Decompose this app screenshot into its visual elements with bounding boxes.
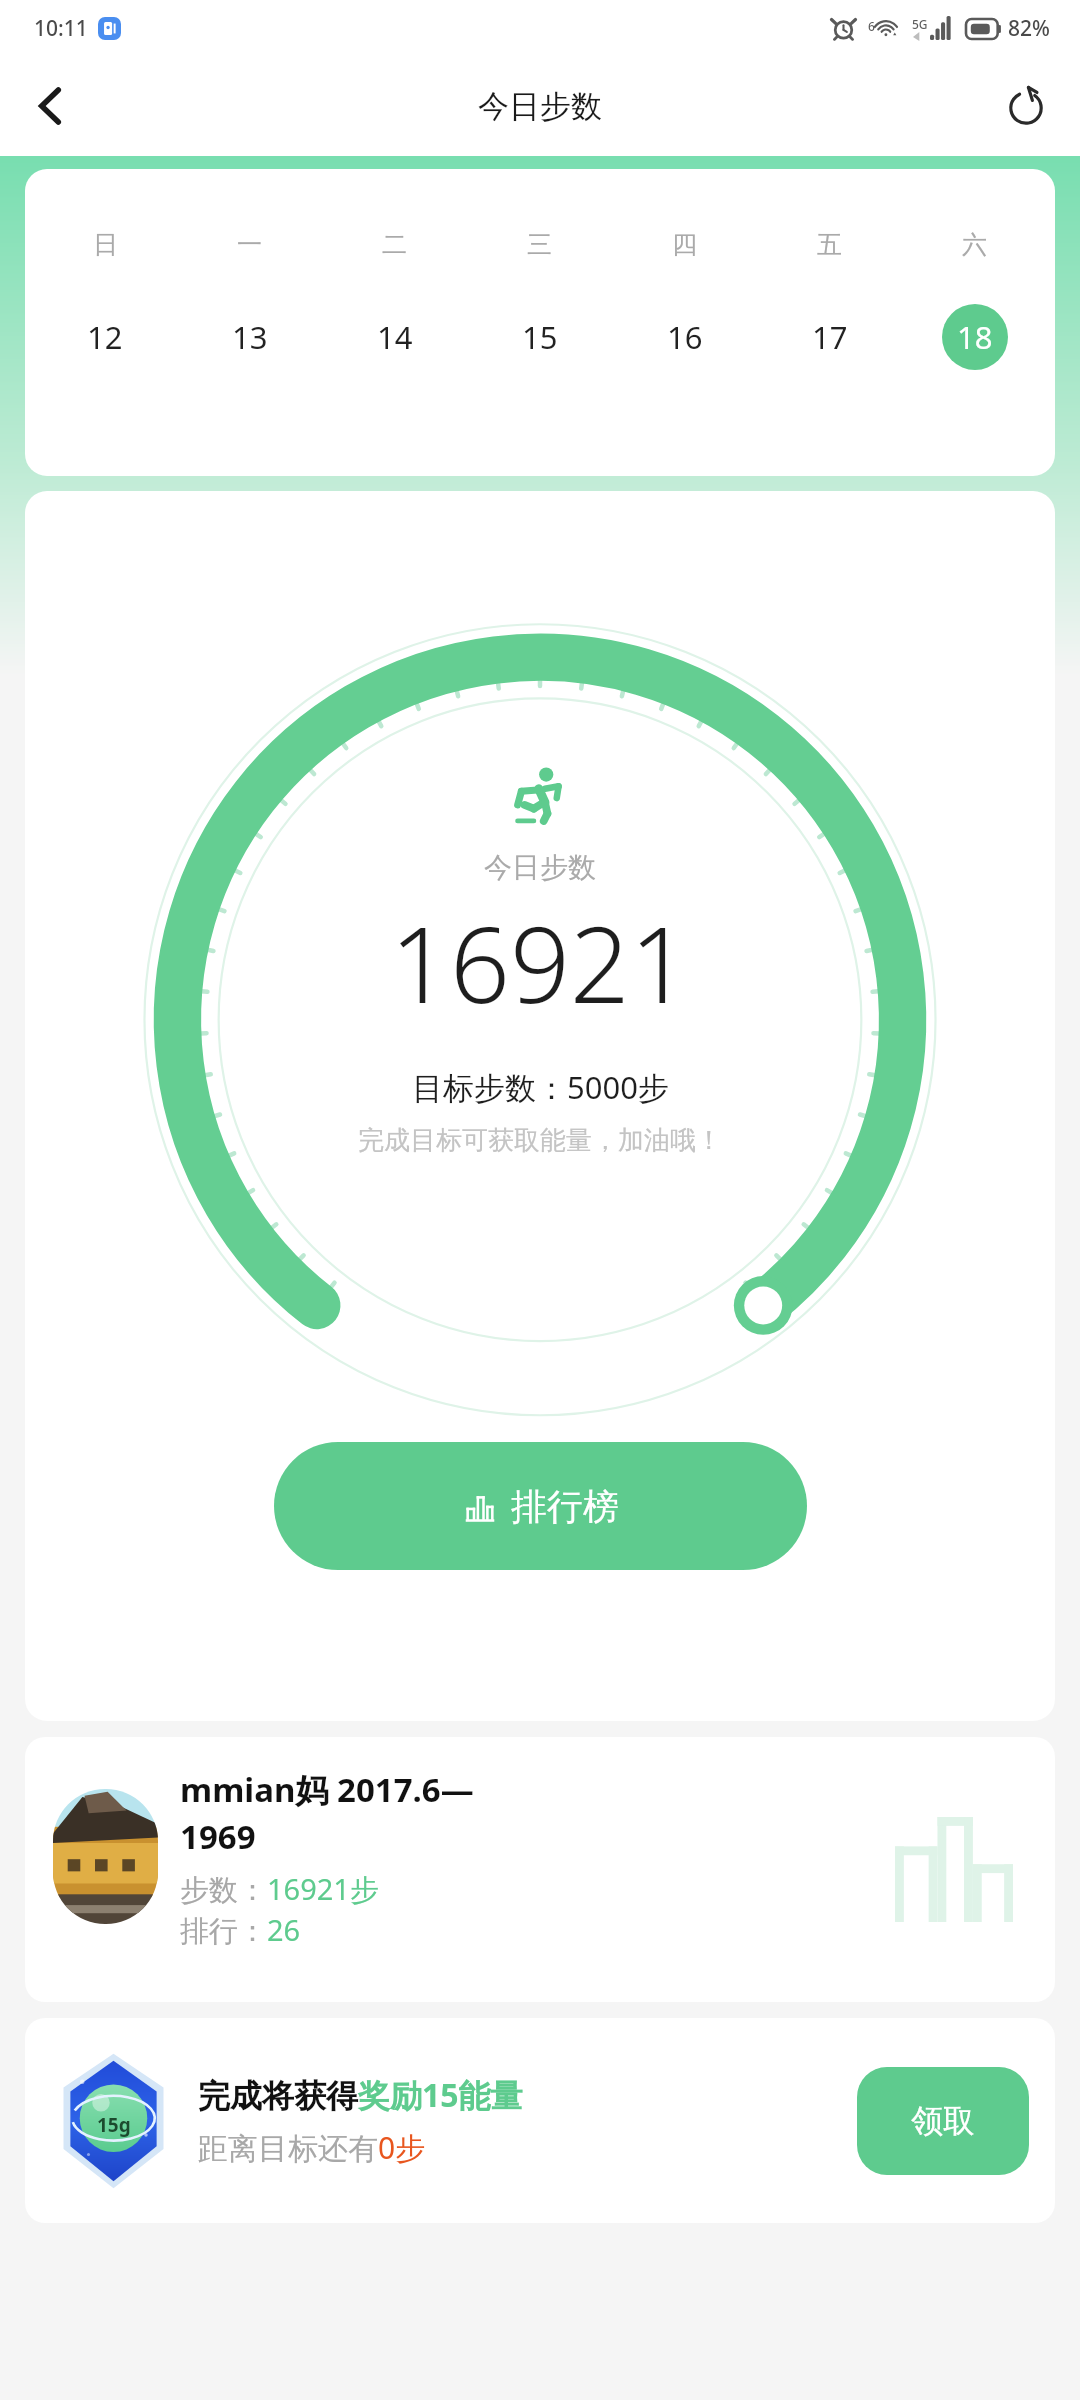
staticText: 日	[93, 229, 118, 260]
staticText: 步数：16921步 排行：26	[180, 1869, 415, 1950]
staticText: 15	[522, 316, 558, 358]
staticText: 16	[667, 316, 703, 358]
staticText: 排行榜	[511, 1484, 619, 1529]
staticText: 三	[527, 229, 552, 260]
staticText: 12	[87, 316, 123, 358]
button[interactable]: 13	[217, 304, 283, 370]
staticText: 82%	[1008, 14, 1050, 43]
button[interactable]: 日	[25, 169, 1055, 476]
staticText: 5G	[912, 16, 928, 32]
staticText: 16921	[390, 891, 690, 1034]
staticText: 6	[868, 18, 875, 34]
staticText: 今日步数	[478, 87, 602, 126]
staticText: 距离目标还有0步	[198, 2127, 426, 2168]
button[interactable]: 14	[362, 304, 428, 370]
button[interactable]: 领取	[857, 2067, 1029, 2175]
staticText: 10:11	[34, 14, 88, 43]
button[interactable]: mmian妈 2017.6—1969	[25, 1737, 1055, 2002]
staticText: 完成目标可获取能量，加油哦！	[358, 1124, 722, 1157]
staticText: 14	[377, 316, 413, 358]
staticText: 四	[672, 229, 697, 260]
button[interactable]: 12	[72, 304, 138, 370]
staticText: 13	[232, 316, 268, 358]
staticText: 领取	[911, 2101, 975, 2141]
staticText: 五	[817, 229, 842, 260]
staticText: 17	[812, 316, 848, 358]
staticText: 一	[237, 229, 262, 260]
button[interactable]: 排行榜	[274, 1442, 807, 1570]
staticText: 今日步数	[484, 850, 596, 885]
button[interactable]: 15	[507, 304, 573, 370]
staticText: 六	[962, 229, 987, 260]
button[interactable]: 17	[797, 304, 863, 370]
staticText: 15g	[97, 2112, 131, 2138]
staticText: 18	[957, 316, 993, 358]
button[interactable]: 18	[942, 304, 1008, 370]
staticText: mmian妈 2017.6—1969	[180, 1767, 520, 1859]
button[interactable]: Back	[18, 74, 82, 138]
staticText: 完成将获得奖励15能量	[198, 2073, 523, 2117]
staticText: 二	[382, 229, 407, 260]
staticText: 目标步数：5000步	[412, 1066, 669, 1108]
button[interactable]: Share	[994, 74, 1058, 138]
button[interactable]: 16	[652, 304, 718, 370]
